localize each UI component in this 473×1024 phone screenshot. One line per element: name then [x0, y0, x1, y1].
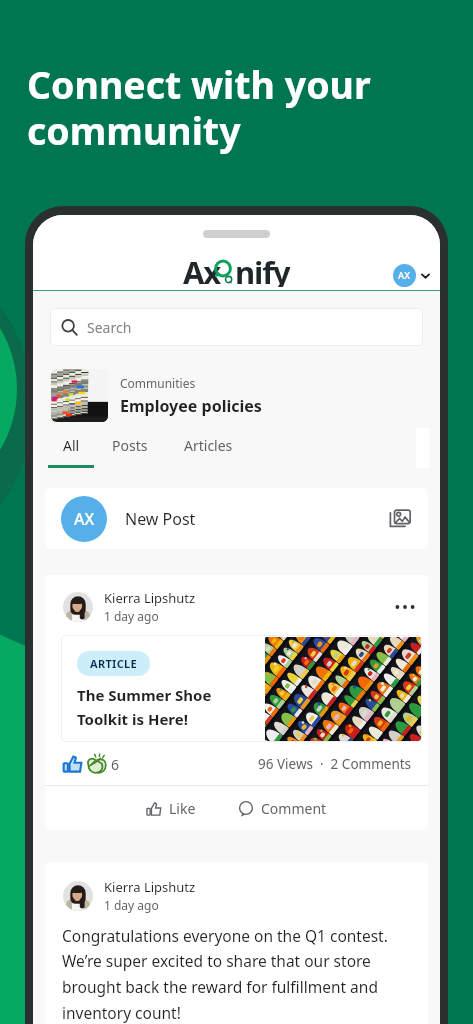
staticText: Ax: [183, 251, 221, 287]
button[interactable]: Like: [132, 793, 210, 824]
staticText: 1 day ago: [104, 897, 159, 913]
button[interactable]: ARTICLE: [62, 636, 421, 741]
staticText: The Summer Shoe Toolkit is Here!: [77, 685, 212, 729]
staticText: New Post: [125, 508, 196, 530]
staticText: Kierra Lipshutz: [104, 589, 196, 607]
staticText: Articles: [184, 436, 233, 455]
button[interactable]: Articles: [166, 428, 250, 468]
button[interactable]: All: [48, 428, 94, 468]
staticText: Connect with your community: [27, 59, 371, 156]
staticText: AX: [74, 508, 95, 530]
staticText: Employee policies: [120, 395, 262, 417]
staticText: 96 Views · 2 Comments: [258, 755, 412, 773]
staticText: ARTICLE: [90, 656, 137, 671]
button[interactable]: Posts: [94, 428, 166, 468]
staticText: AX: [398, 269, 411, 282]
staticText: Search: [87, 318, 132, 337]
button[interactable]: AX: [391, 262, 432, 289]
staticText: All: [63, 436, 80, 455]
button[interactable]: More options: [392, 594, 418, 620]
button[interactable]: Search: [51, 309, 422, 345]
button[interactable]: Communities: [51, 369, 422, 422]
staticText: Posts: [112, 436, 148, 455]
button[interactable]: AX: [45, 488, 428, 549]
staticText: Kierra Lipshutz: [104, 878, 196, 896]
staticText: Congratulations everyone on the Q1 conte…: [62, 925, 411, 1024]
staticText: Like: [169, 799, 196, 818]
staticText: Comment: [261, 799, 327, 818]
staticText: Communities: [120, 375, 196, 391]
button[interactable]: Add photo: [389, 507, 412, 530]
button[interactable]: Comment: [224, 793, 341, 824]
staticText: 1 day ago: [104, 608, 159, 624]
staticText: nify: [235, 251, 290, 287]
staticText: 6: [111, 755, 120, 774]
